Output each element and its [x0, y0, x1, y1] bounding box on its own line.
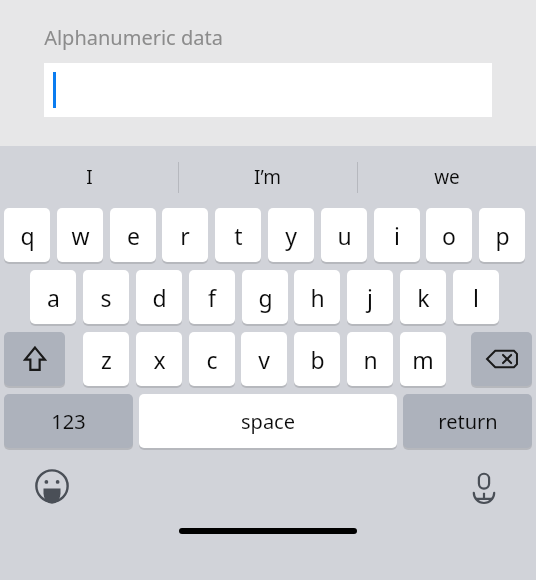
button[interactable]: we: [357, 146, 536, 208]
staticText: z: [101, 344, 112, 375]
staticText: I’m: [254, 164, 281, 190]
staticText: m: [412, 344, 434, 375]
staticText: y: [285, 220, 297, 251]
staticText: l: [473, 282, 479, 313]
button[interactable]: w: [57, 208, 103, 262]
button[interactable]: s: [83, 270, 129, 324]
button[interactable]: d: [136, 270, 182, 324]
button[interactable]: Shift: [4, 332, 65, 386]
button[interactable]: space: [139, 394, 397, 448]
button[interactable]: z: [83, 332, 129, 386]
button[interactable]: I’m: [178, 146, 357, 208]
staticText: Alphanumeric data: [44, 24, 223, 51]
button[interactable]: Dictation: [460, 462, 508, 510]
button[interactable]: f: [189, 270, 235, 324]
staticText: 123: [51, 408, 86, 435]
button[interactable]: m: [400, 332, 446, 386]
button[interactable]: r: [162, 208, 208, 262]
staticText: I: [86, 164, 93, 190]
button[interactable]: [44, 63, 492, 117]
staticText: q: [20, 220, 35, 251]
staticText: e: [127, 220, 140, 251]
button[interactable]: y: [268, 208, 314, 262]
button[interactable]: I: [0, 146, 178, 208]
staticText: h: [310, 282, 325, 313]
button[interactable]: o: [426, 208, 472, 262]
staticText: return: [438, 408, 498, 435]
staticText: r: [180, 220, 190, 251]
staticText: u: [337, 220, 352, 251]
button[interactable]: u: [321, 208, 367, 262]
staticText: k: [417, 282, 430, 313]
staticText: v: [258, 344, 270, 375]
button[interactable]: i: [374, 208, 420, 262]
staticText: s: [100, 282, 112, 313]
staticText: we: [434, 164, 460, 190]
staticText: d: [152, 282, 167, 313]
staticText: x: [153, 344, 166, 375]
staticText: f: [208, 282, 216, 313]
button[interactable]: b: [294, 332, 340, 386]
button[interactable]: Backspace: [471, 332, 532, 386]
button[interactable]: h: [294, 270, 340, 324]
staticText: a: [47, 282, 60, 313]
staticText: b: [310, 344, 325, 375]
staticText: i: [394, 220, 400, 251]
button[interactable]: j: [347, 270, 393, 324]
button[interactable]: a: [30, 270, 76, 324]
button[interactable]: c: [189, 332, 235, 386]
button[interactable]: l: [453, 270, 499, 324]
staticText: w: [71, 220, 90, 251]
button[interactable]: v: [241, 332, 287, 386]
staticText: j: [367, 282, 373, 313]
button[interactable]: g: [242, 270, 288, 324]
staticText: t: [234, 220, 243, 251]
button[interactable]: x: [136, 332, 182, 386]
staticText: space: [241, 408, 295, 435]
staticText: g: [258, 282, 273, 313]
button[interactable]: k: [400, 270, 446, 324]
button[interactable]: p: [479, 208, 525, 262]
button[interactable]: 123: [4, 394, 133, 448]
staticText: c: [206, 344, 218, 375]
staticText: n: [363, 344, 378, 375]
button[interactable]: q: [4, 208, 50, 262]
staticText: o: [442, 220, 456, 251]
button[interactable]: return: [403, 394, 532, 448]
button[interactable]: t: [215, 208, 261, 262]
staticText: p: [495, 220, 510, 251]
button[interactable]: n: [347, 332, 393, 386]
button[interactable]: e: [110, 208, 156, 262]
button[interactable]: Emoji keyboard: [28, 462, 76, 510]
